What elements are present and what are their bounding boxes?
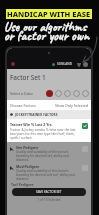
button[interactable]: Show Only Selected	[55, 103, 88, 108]
staticText: 1 of 10 Selected	[7, 198, 91, 202]
button[interactable]: Colour option	[82, 90, 89, 97]
button[interactable]: Choose Factors	[10, 103, 36, 108]
button[interactable]: Mud Pedigree	[7, 163, 91, 182]
staticText: Turf Pedigree	[11, 182, 34, 187]
staticText: Quality and suitability of this horse's …	[16, 169, 80, 181]
button[interactable]: Filter	[76, 62, 81, 67]
button[interactable]: Colour option	[64, 90, 71, 97]
staticText: Use our algorithms	[4, 19, 87, 35]
staticText: SUNLAND	[57, 62, 73, 66]
button[interactable]: Sire Pedigree	[7, 144, 91, 163]
staticText: or factor your own	[4, 27, 89, 44]
button[interactable]: Colour option	[55, 90, 62, 97]
staticText: Quality and suitability of this horse's …	[16, 150, 80, 162]
staticText: Mud Pedigree	[16, 164, 40, 169]
staticText: Select a Color	[10, 91, 33, 96]
button[interactable]: Toggle factor	[82, 123, 88, 129]
staticText: Trainer Win % Last 2 Yrs.	[10, 122, 53, 127]
button[interactable]: Home	[10, 61, 16, 67]
staticText: HANDICAP WITH EASE	[7, 9, 91, 19]
button[interactable]: Trainer Win % Last 2 Yrs.	[7, 119, 91, 142]
button[interactable]: Colour option	[73, 90, 80, 97]
staticText: SAVE FACTOR SET	[36, 190, 62, 194]
staticText: Sire Pedigree	[16, 145, 39, 150]
staticText: JOCKEY/TRAINER FACTORS	[15, 113, 58, 117]
button[interactable]: Red colour	[46, 90, 53, 97]
button[interactable]: SAVE FACTOR SET	[12, 188, 86, 196]
button[interactable]: Account	[83, 62, 88, 67]
staticText: Factor Set 1	[10, 73, 46, 82]
staticText: Trainer & Jockey combo % wins over the l…	[10, 128, 80, 140]
